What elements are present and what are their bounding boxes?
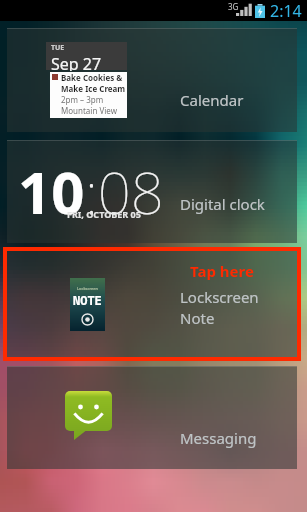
- button[interactable]: [7, 250, 297, 357]
- staticText: 2pm – 3pm: [61, 94, 104, 105]
- button[interactable]: [7, 366, 297, 469]
- staticText: Lockscreen: [77, 286, 98, 291]
- staticText: 2:14: [270, 0, 302, 21]
- staticText: Tap here: [190, 261, 254, 281]
- staticText: NOTE: [73, 292, 102, 308]
- staticText: Calendar: [180, 90, 244, 110]
- staticText: Messaging: [180, 428, 257, 448]
- staticText: 10: [18, 152, 85, 231]
- staticText: Sep 27: [51, 53, 102, 71]
- button[interactable]: [7, 28, 297, 132]
- staticText: FRI, OCTOBER 05: [67, 208, 141, 220]
- staticText: 3G: [228, 1, 239, 12]
- staticText: Bake Cookies &: [61, 72, 123, 83]
- staticText: Lockscreen Note: [180, 287, 259, 329]
- staticText: Make Ice Cream: [61, 83, 126, 94]
- staticText: Mountain View: [61, 105, 117, 116]
- staticText: Digital clock: [180, 194, 265, 214]
- staticText: TUE: [51, 43, 65, 53]
- staticText: :08: [85, 152, 164, 231]
- button[interactable]: [7, 140, 297, 243]
